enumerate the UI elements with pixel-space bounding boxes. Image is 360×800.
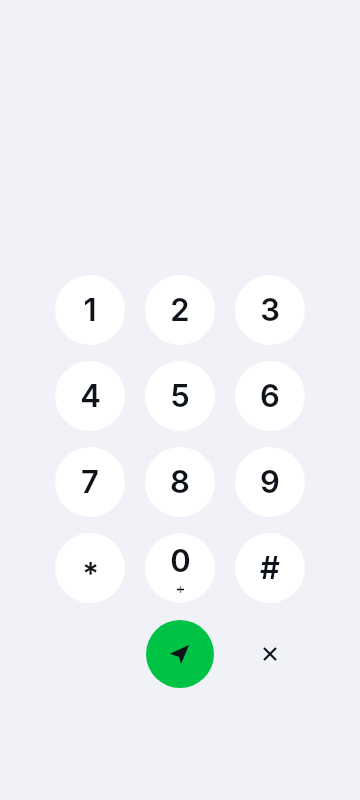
- staticText: 2: [170, 291, 190, 329]
- button[interactable]: 5: [145, 361, 215, 431]
- staticText: 5: [170, 377, 190, 415]
- staticText: 1: [83, 291, 97, 329]
- button[interactable]: Call: [146, 620, 214, 688]
- staticText: 8: [170, 463, 190, 501]
- button[interactable]: 0: [145, 533, 215, 603]
- staticText: 9: [260, 463, 280, 501]
- button[interactable]: 1: [55, 275, 125, 345]
- button[interactable]: 2: [145, 275, 215, 345]
- staticText: 6: [260, 377, 280, 415]
- button[interactable]: 9: [235, 447, 305, 517]
- staticText: 0: [170, 542, 191, 580]
- staticText: *: [82, 555, 99, 593]
- button[interactable]: Delete: [235, 619, 305, 689]
- button[interactable]: *: [55, 533, 125, 603]
- staticText: 4: [80, 377, 101, 415]
- button[interactable]: 7: [55, 447, 125, 517]
- button[interactable]: 6: [235, 361, 305, 431]
- button[interactable]: #: [235, 533, 305, 603]
- staticText: 3: [260, 291, 280, 329]
- staticText: #: [260, 549, 280, 587]
- staticText: 7: [81, 463, 99, 501]
- button[interactable]: 4: [55, 361, 125, 431]
- button[interactable]: 3: [235, 275, 305, 345]
- button[interactable]: 8: [145, 447, 215, 517]
